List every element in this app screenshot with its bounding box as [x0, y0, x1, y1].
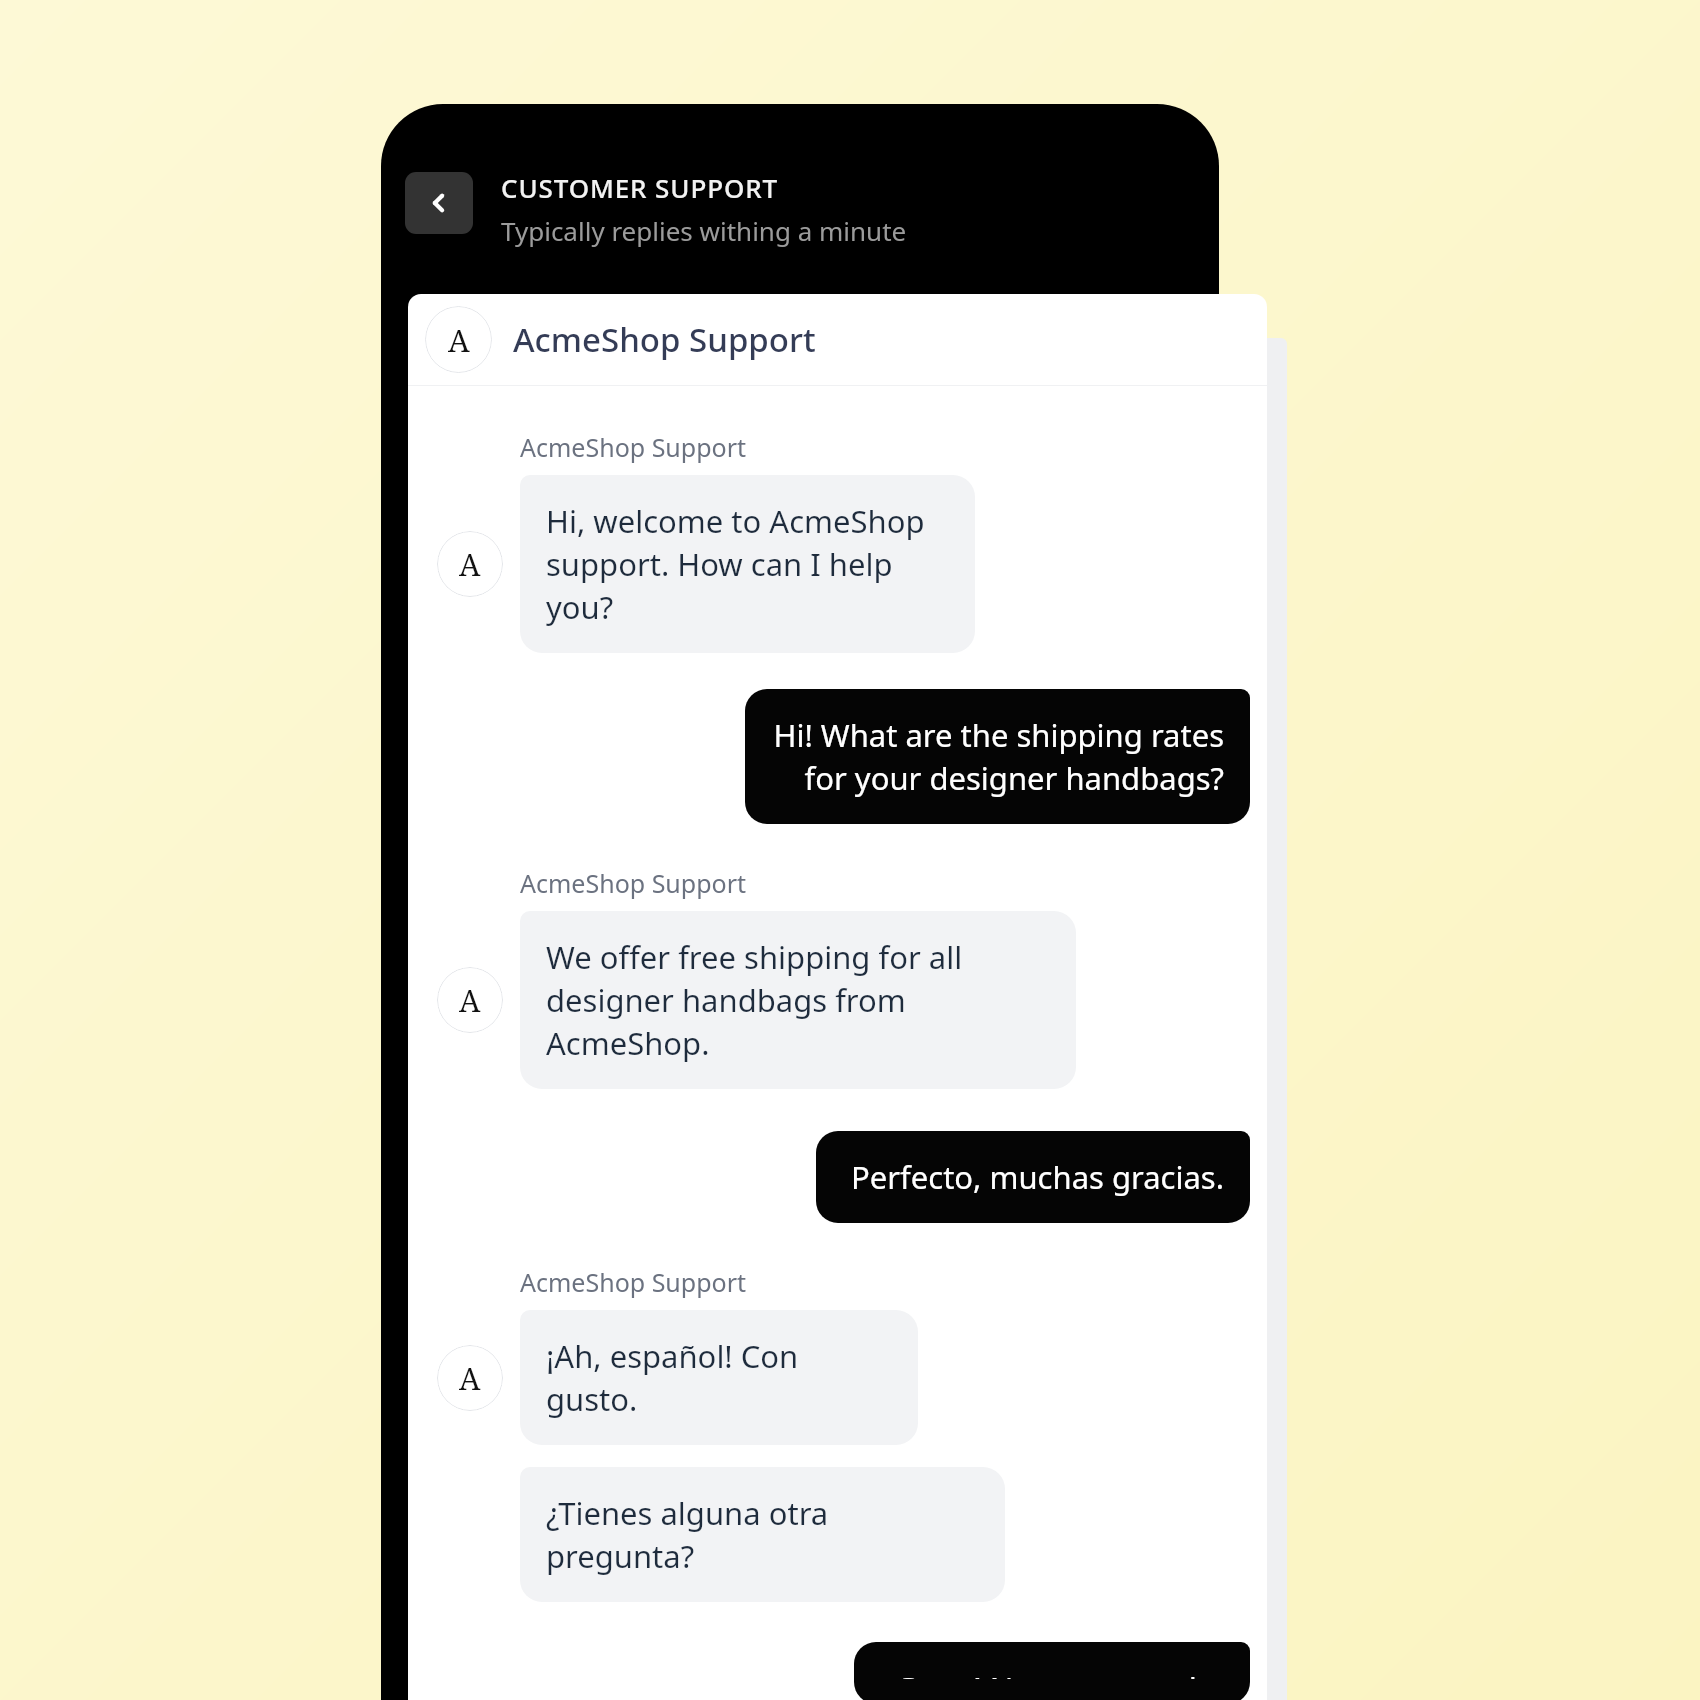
staticText: Hi, welcome to AcmeShop support. How can… — [546, 500, 949, 628]
button[interactable]: A — [408, 294, 1267, 385]
button[interactable]: Perfecto, muchas gracias. — [816, 1131, 1250, 1223]
staticText: CUSTOMER SUPPORT — [501, 170, 779, 205]
staticText: AcmeShop Support — [520, 1265, 747, 1299]
staticText: AcmeShop Support — [513, 317, 816, 362]
staticText: A — [459, 544, 481, 585]
button[interactable]: We offer free shipping for all designer … — [520, 911, 1076, 1089]
button[interactable]: Hi, welcome to AcmeShop support. How can… — [520, 475, 975, 653]
staticText: Hi! What are the shipping rates for your… — [771, 714, 1224, 799]
staticText: We offer free shipping for all designer … — [546, 936, 1050, 1064]
staticText: AcmeShop Support — [520, 430, 747, 464]
staticText: ¿Tienes alguna otra pregunta? — [546, 1492, 979, 1577]
staticText: A — [448, 319, 470, 361]
button[interactable]: ¿Tienes alguna otra pregunta? — [520, 1467, 1005, 1602]
staticText: A — [459, 980, 481, 1021]
staticText: ¡Guau! No, eso es todo. ¡Gracias! — [880, 1667, 1224, 1679]
staticText: ¡Ah, español! Con gusto. — [546, 1335, 892, 1420]
staticText: Perfecto, muchas gracias. — [842, 1156, 1224, 1198]
staticText: AcmeShop Support — [520, 866, 747, 900]
button[interactable]: ¡Guau! No, eso es todo. ¡Gracias! — [854, 1642, 1250, 1700]
button[interactable]: Back — [405, 172, 473, 234]
staticText: Typically replies withing a minute — [501, 213, 907, 248]
button[interactable]: ¡Ah, español! Con gusto. — [520, 1310, 918, 1445]
button[interactable]: Hi! What are the shipping rates for your… — [745, 689, 1250, 824]
staticText: A — [459, 1358, 481, 1399]
